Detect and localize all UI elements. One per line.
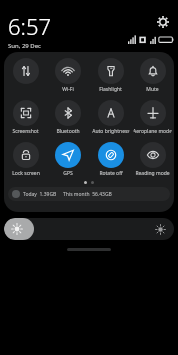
button[interactable]: Data	[5, 57, 46, 93]
staticText: GPS	[63, 170, 73, 177]
staticText: Today 1.39GB	[23, 191, 57, 198]
button[interactable]: Wi-Fi	[47, 57, 88, 93]
button[interactable]: GPS	[47, 141, 88, 177]
button[interactable]: Today 1.39GB	[8, 187, 170, 201]
button[interactable]: Brightness	[4, 218, 174, 240]
staticText: Aeroplane mode	[133, 128, 172, 135]
button[interactable]: Rotate off	[90, 141, 131, 177]
staticText: 6:57	[8, 11, 52, 41]
button[interactable]: Bluetooth	[47, 99, 88, 135]
button[interactable]: Reading mode	[132, 141, 173, 177]
button[interactable]: Lock screen	[5, 141, 46, 177]
button[interactable]: Aeroplane mode	[132, 99, 173, 135]
button[interactable]: Auto brightness	[90, 99, 131, 135]
staticText: Lock screen	[12, 170, 40, 177]
staticText: Sun, 29 Dec	[8, 42, 41, 50]
staticText: This month 56.43GB	[63, 191, 112, 198]
staticText: Wi-Fi	[62, 86, 74, 93]
button[interactable]: Screenshot	[5, 99, 46, 135]
button[interactable]: Flashlight	[90, 57, 131, 93]
staticText: Mute	[146, 86, 159, 93]
staticText: Bluetooth	[56, 128, 80, 135]
button[interactable]: Mute	[132, 57, 173, 93]
staticText: Screenshot	[12, 128, 39, 135]
staticText: Reading mode	[135, 170, 170, 177]
staticText: Auto brightness	[92, 128, 130, 135]
button[interactable]: Settings	[156, 15, 170, 29]
staticText: Flashlight	[99, 86, 122, 93]
staticText: Rotate off	[99, 170, 123, 177]
